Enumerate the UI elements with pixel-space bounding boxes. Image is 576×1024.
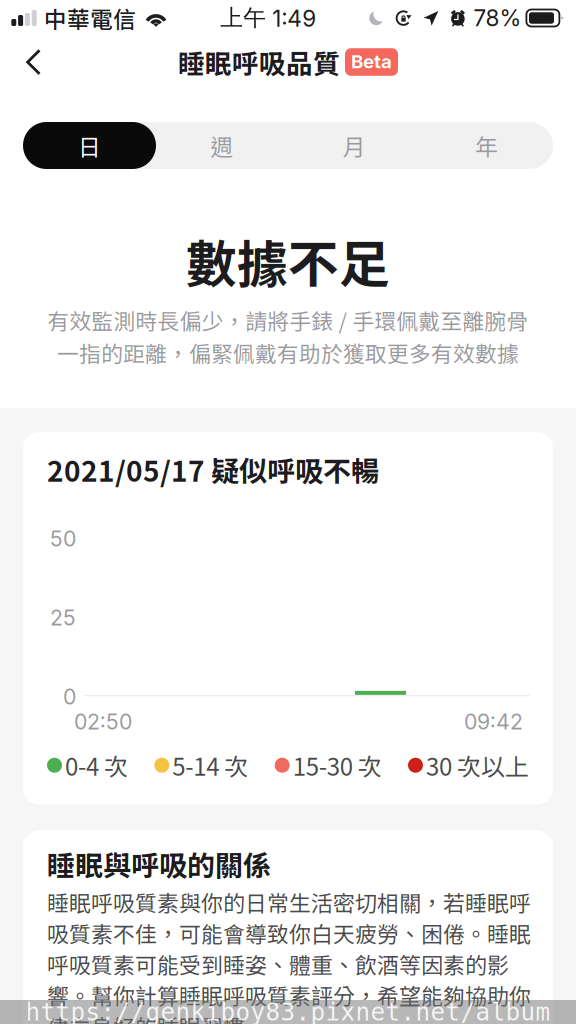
staticText: 0 <box>63 684 76 710</box>
staticText: 78% <box>473 4 521 32</box>
button[interactable]: 週 <box>156 122 288 169</box>
staticText: 09:42 <box>464 709 523 735</box>
staticText: 0-4 次 <box>65 748 128 783</box>
staticText: 50 <box>50 526 76 552</box>
staticText: 30 次以上 <box>426 748 529 783</box>
staticText: 週 <box>210 129 233 162</box>
staticText: 5-14 次 <box>172 748 248 783</box>
staticText: 睡眠呼吸品質 <box>178 43 340 81</box>
staticText: 15-30 次 <box>293 748 382 783</box>
staticText: 睡眠與呼吸的關係 <box>47 844 271 884</box>
staticText: https://genkiboy83.pixnet.net/album <box>25 998 550 1024</box>
staticText: 中華電信 <box>44 2 136 34</box>
staticText: 02:50 <box>74 709 132 735</box>
staticText: 吸質素不佳，可能會導致你白天疲勞、困倦。睡眠 <box>47 917 531 949</box>
staticText: 建立良好的睡眠習慣 <box>47 1010 245 1024</box>
staticText: 25 <box>50 605 76 631</box>
button[interactable]: Back <box>0 39 58 84</box>
staticText: 數據不足 <box>186 224 390 297</box>
staticText: Beta <box>351 50 392 73</box>
staticText: 2021/05/17 疑似呼吸不暢 <box>47 449 379 490</box>
staticText: 呼吸質素可能受到睡姿、體重、飲酒等因素的影 <box>47 948 509 980</box>
button[interactable]: 年 <box>420 122 553 169</box>
staticText: 日 <box>78 129 101 162</box>
button[interactable]: 月 <box>288 122 420 169</box>
button[interactable]: 日 <box>23 122 156 169</box>
staticText: 年 <box>475 129 498 162</box>
staticText: 響。幫你計算睡眠呼吸質素評分，希望能夠協助你 <box>47 979 531 1011</box>
staticText: 一指的距離，偏緊佩戴有助於獲取更多有效數據 <box>57 337 519 368</box>
staticText: 睡眠呼吸質素與你的日常生活密切相關，若睡眠呼 <box>47 886 531 918</box>
staticText: 上午 1:49 <box>220 4 316 32</box>
staticText: 有效監測時長偏少，請將手錶 / 手環佩戴至離腕骨 <box>47 304 528 336</box>
staticText: 月 <box>342 129 365 162</box>
